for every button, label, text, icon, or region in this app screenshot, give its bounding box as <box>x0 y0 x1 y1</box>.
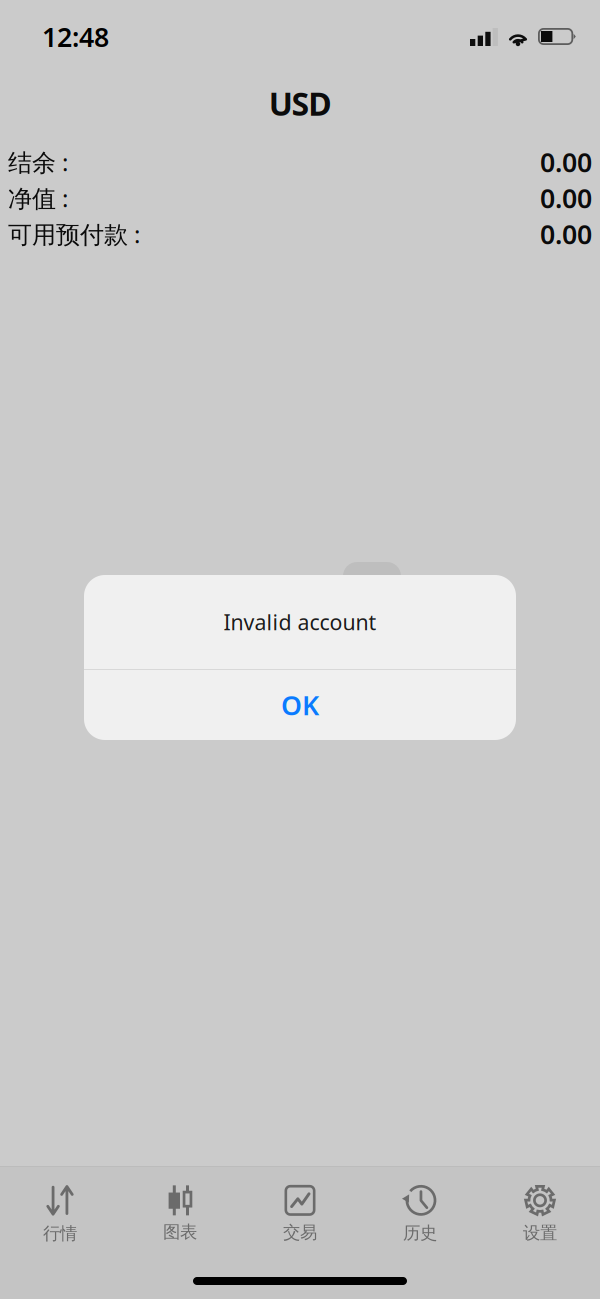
staticText: Invalid account <box>223 608 376 636</box>
button[interactable]: 设置 <box>480 1175 600 1252</box>
staticText: 设置 <box>523 1222 557 1244</box>
button[interactable]: OK <box>84 670 516 740</box>
staticText: 0.00 <box>540 180 592 216</box>
staticText: OK <box>281 687 319 723</box>
staticText: 可用预付款 : <box>8 218 140 250</box>
staticText: 行情 <box>43 1223 77 1244</box>
staticText: 0.00 <box>540 144 592 180</box>
staticText: 结余 : <box>8 146 68 178</box>
button[interactable]: 交易 <box>240 1176 360 1251</box>
staticText: 历史 <box>403 1222 437 1244</box>
button[interactable]: 历史 <box>360 1175 480 1252</box>
staticText: 12:48 <box>42 19 109 54</box>
button[interactable]: 行情 <box>0 1175 120 1252</box>
button[interactable]: 图表 <box>120 1176 240 1251</box>
staticText: 净值 : <box>8 182 68 214</box>
staticText: 交易 <box>283 1222 317 1243</box>
staticText: 图表 <box>163 1221 197 1243</box>
staticText: USD <box>269 82 331 124</box>
staticText: 0.00 <box>540 216 592 252</box>
